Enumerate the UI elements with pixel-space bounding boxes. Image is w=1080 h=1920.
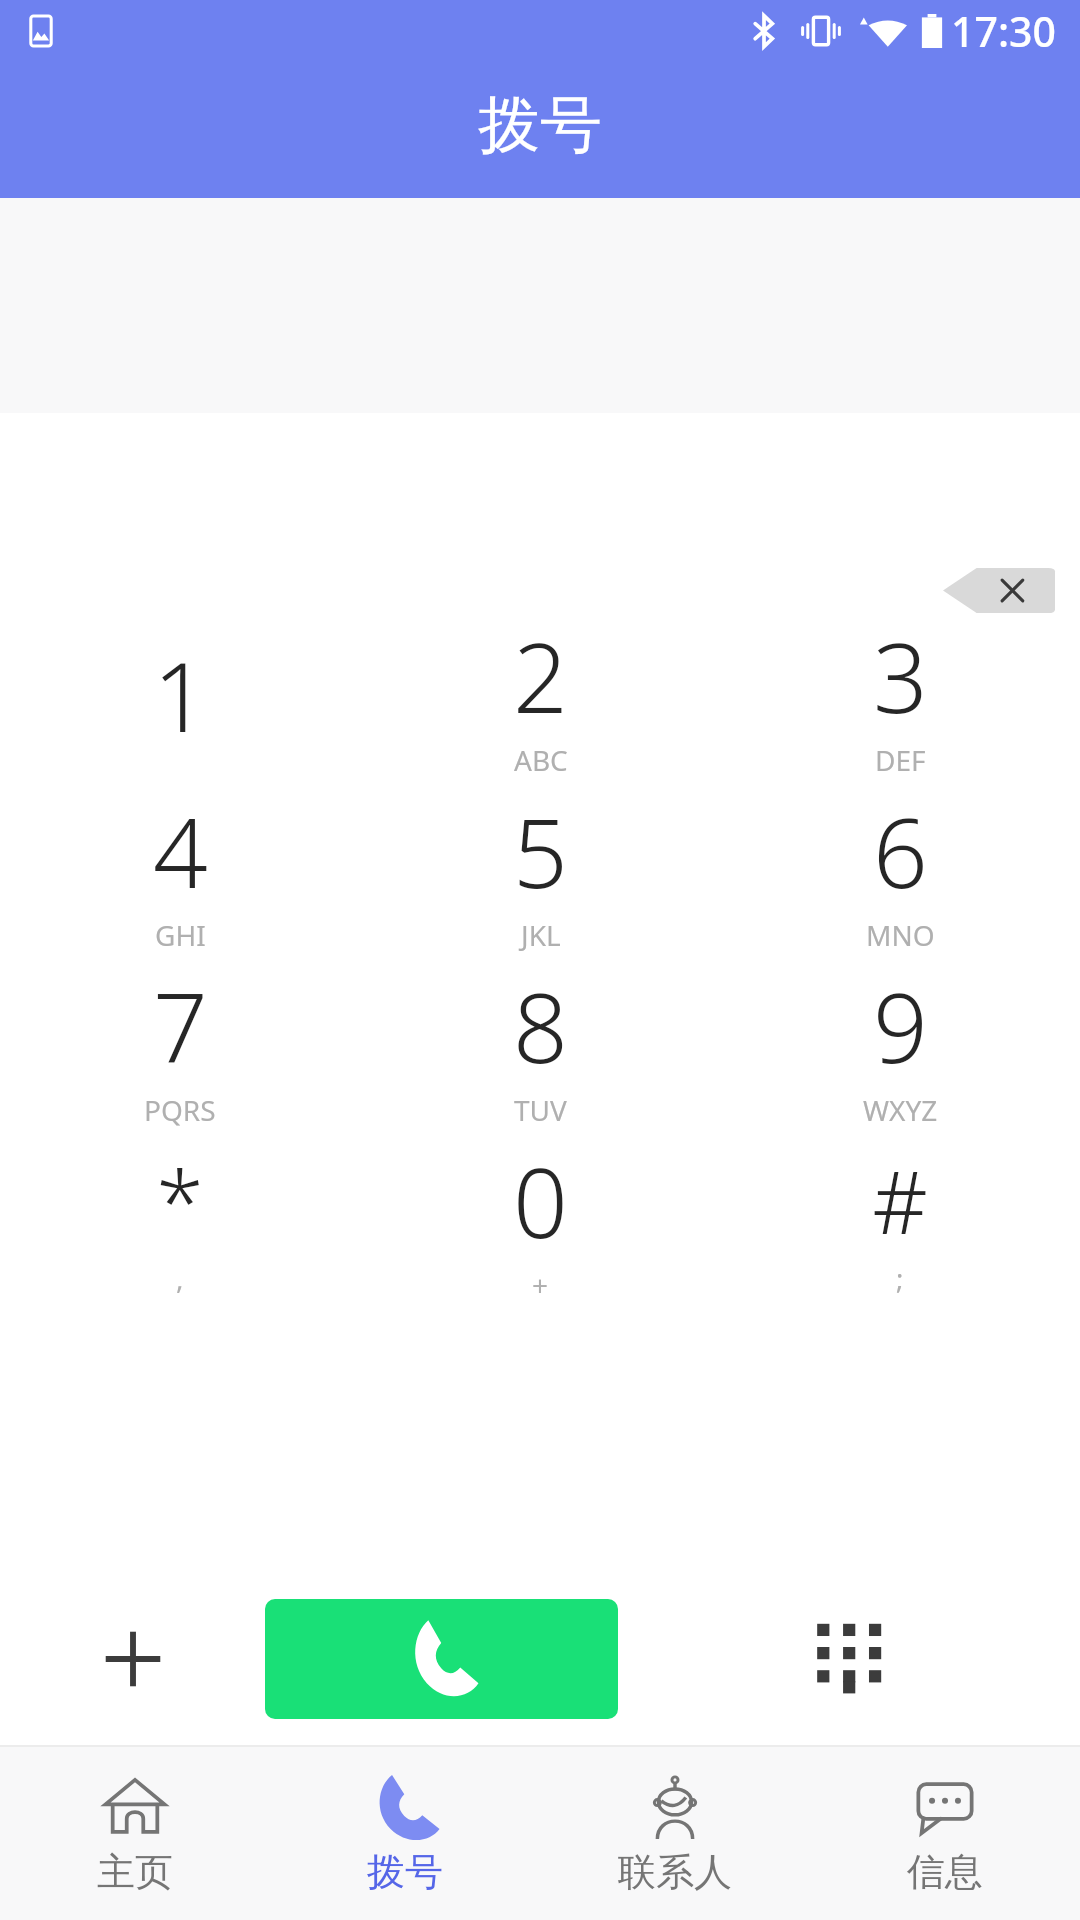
staticText: * bbox=[156, 1142, 204, 1259]
staticText: 3 bbox=[873, 610, 928, 741]
staticText: DEF bbox=[875, 741, 926, 779]
button[interactable]: 1 bbox=[0, 613, 360, 788]
staticText: WXYZ bbox=[863, 1091, 938, 1129]
staticText: 9 bbox=[873, 960, 928, 1091]
staticText: 5 bbox=[513, 785, 568, 916]
staticText: 主页 bbox=[97, 1848, 173, 1896]
staticText: + bbox=[532, 1266, 549, 1304]
staticText: 联系人 bbox=[618, 1848, 732, 1896]
staticText: 拨号 bbox=[367, 1848, 443, 1896]
button[interactable]: 主页 bbox=[0, 1747, 270, 1920]
staticText: ABC bbox=[514, 741, 568, 779]
staticText: 8 bbox=[513, 960, 568, 1091]
button[interactable]: # bbox=[720, 1138, 1080, 1313]
button[interactable]: 2 bbox=[360, 613, 720, 788]
staticText: TUV bbox=[514, 1091, 567, 1129]
button[interactable]: 3 bbox=[720, 613, 1080, 788]
button[interactable]: 信息 bbox=[810, 1747, 1080, 1920]
staticText: GHI bbox=[155, 916, 206, 954]
staticText: 0 bbox=[513, 1135, 568, 1266]
button[interactable]: 拨号 bbox=[270, 1747, 540, 1920]
staticText: JKL bbox=[521, 916, 561, 954]
staticText: 6 bbox=[873, 785, 928, 916]
staticText: 1 bbox=[153, 629, 208, 760]
staticText: 7 bbox=[153, 960, 208, 1091]
button[interactable]: 联系人 bbox=[540, 1747, 810, 1920]
button[interactable]: 5 bbox=[360, 788, 720, 963]
staticText: # bbox=[872, 1142, 928, 1259]
button[interactable]: 9 bbox=[720, 963, 1080, 1138]
staticText: PQRS bbox=[144, 1091, 216, 1129]
staticText: MNO bbox=[866, 916, 935, 954]
staticText: ; bbox=[896, 1259, 904, 1297]
staticText: 拨号 bbox=[478, 86, 602, 164]
staticText: 17:30 bbox=[951, 3, 1056, 59]
staticText: 信息 bbox=[907, 1848, 983, 1896]
button[interactable]: 6 bbox=[720, 788, 1080, 963]
button[interactable]: 8 bbox=[360, 963, 720, 1138]
button[interactable]: 7 bbox=[0, 963, 360, 1138]
button[interactable]: Delete bbox=[943, 568, 1055, 613]
staticText: 4 bbox=[153, 785, 208, 916]
button[interactable]: Add contact bbox=[0, 1599, 265, 1719]
button[interactable]: Keypad bbox=[618, 1599, 1080, 1719]
staticText: , bbox=[176, 1259, 184, 1297]
button[interactable]: 0 bbox=[360, 1138, 720, 1313]
button[interactable]: 4 bbox=[0, 788, 360, 963]
button[interactable]: * bbox=[0, 1138, 360, 1313]
staticText: 2 bbox=[513, 610, 568, 741]
button[interactable]: Call bbox=[265, 1599, 618, 1719]
